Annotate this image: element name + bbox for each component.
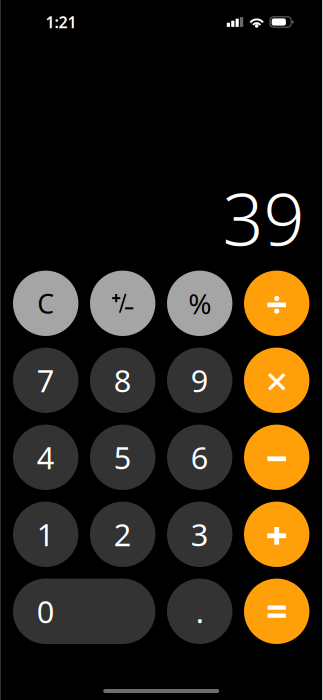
button[interactable]: 5	[90, 425, 155, 490]
staticText: 4	[37, 437, 55, 478]
button[interactable]: 1	[13, 502, 78, 567]
button[interactable]: Equals	[244, 579, 309, 644]
staticText: 7	[37, 360, 55, 401]
button[interactable]: Divide	[244, 271, 309, 336]
button[interactable]: 4	[13, 425, 78, 490]
staticText: 6	[191, 437, 209, 478]
button[interactable]: 6	[167, 425, 232, 490]
staticText: 3	[191, 514, 209, 555]
button[interactable]: 2	[90, 502, 155, 567]
staticText: 39	[222, 170, 304, 266]
staticText: 5	[114, 437, 132, 478]
button[interactable]: 3	[167, 502, 232, 567]
staticText: 0	[37, 591, 55, 632]
button[interactable]: C	[13, 271, 78, 336]
button[interactable]: 9	[167, 348, 232, 413]
button[interactable]: %	[167, 271, 232, 336]
button[interactable]: Subtract	[244, 425, 309, 490]
staticText: C	[37, 286, 54, 321]
staticText: 8	[114, 360, 132, 401]
button[interactable]: 7	[13, 348, 78, 413]
button[interactable]: Multiply	[244, 348, 309, 413]
button[interactable]: Add	[244, 502, 309, 567]
staticText: %	[188, 285, 211, 322]
staticText: 9	[191, 360, 209, 401]
button[interactable]: .	[167, 579, 232, 644]
staticText: 2	[114, 514, 132, 555]
button[interactable]: 0	[13, 579, 155, 644]
staticText: 1:21	[45, 11, 76, 33]
button[interactable]: Plus minus	[90, 271, 155, 336]
staticText: 1	[37, 514, 55, 555]
staticText: .	[196, 591, 204, 632]
button[interactable]: 8	[90, 348, 155, 413]
